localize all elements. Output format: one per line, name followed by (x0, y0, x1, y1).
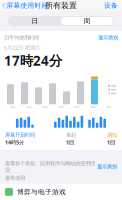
staticText: 1回 (107, 139, 115, 146)
staticText: 日平均使用时间 (4, 34, 39, 41)
staticText: 最常使用 (5, 175, 25, 181)
staticText: 设备 (104, 1, 118, 10)
button[interactable]: 显示类别 (98, 34, 118, 41)
staticText: 所有装置 (45, 1, 77, 10)
staticText: 日 (31, 17, 38, 25)
staticText: 拿起 (66, 132, 76, 138)
staticText: 显示类别 (97, 163, 117, 170)
staticText: 显示类别 (98, 34, 118, 41)
button[interactable]: 设备 (104, 0, 122, 12)
staticText: 屏幕开启时间 (5, 132, 35, 138)
button[interactable]: 博弈与电子游戏 (0, 184, 122, 200)
staticText: 14時5分 (5, 139, 24, 146)
button[interactable]: 日 (9, 17, 61, 25)
button[interactable]: 屏幕使用时间 (0, 0, 48, 12)
staticText: 通知 (107, 132, 117, 138)
staticText: 查看各个类别、应用程序与网站的使用情况 (5, 160, 95, 173)
staticText: 17時24分 (4, 52, 62, 69)
button[interactable]: 周 (61, 17, 113, 25)
staticText: 1回 (66, 139, 74, 146)
staticText: 6月22日 星期六 (4, 44, 40, 51)
staticText: 屏幕使用时间 (6, 1, 48, 10)
staticText: 博弈与电子游戏 (17, 188, 66, 196)
staticText: 周 (83, 17, 90, 25)
button[interactable]: 显示类别 (97, 163, 117, 170)
